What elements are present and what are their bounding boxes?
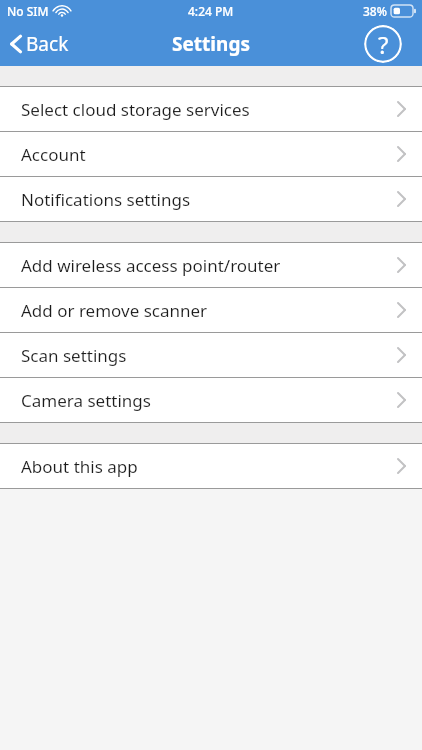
button[interactable]: Camera settings <box>0 378 422 422</box>
button[interactable]: Back <box>0 27 79 61</box>
staticText: Add or remove scanner <box>21 299 208 322</box>
button[interactable]: Add or remove scanner <box>0 288 422 332</box>
staticText: Camera settings <box>21 389 151 412</box>
staticText: Select cloud storage services <box>21 98 250 121</box>
button[interactable]: Scan settings <box>0 333 422 377</box>
staticText: Add wireless access point/router <box>21 254 281 277</box>
staticText: Scan settings <box>21 344 127 367</box>
button[interactable]: Help <box>364 25 402 63</box>
staticText: Account <box>21 143 86 166</box>
button[interactable]: Notifications settings <box>0 177 422 221</box>
button[interactable]: Select cloud storage services <box>0 87 422 131</box>
button[interactable]: About this app <box>0 444 422 488</box>
staticText: No SIM <box>7 3 49 19</box>
staticText: ? <box>378 28 389 61</box>
button[interactable]: Account <box>0 132 422 176</box>
staticText: Notifications settings <box>21 188 191 211</box>
staticText: 4:24 PM <box>188 3 234 19</box>
staticText: About this app <box>21 455 138 478</box>
staticText: 38% <box>363 3 387 19</box>
button[interactable]: Add wireless access point/router <box>0 243 422 287</box>
staticText: Back <box>26 31 69 57</box>
staticText: Settings <box>0 31 422 57</box>
